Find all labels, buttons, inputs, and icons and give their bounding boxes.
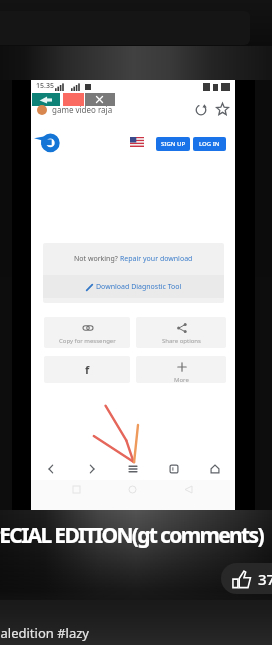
staticText: Download Diagnostic Tool <box>96 282 182 292</box>
button[interactable]: #specialedition #lazy <box>0 624 89 642</box>
staticText: Repair your download <box>120 254 193 264</box>
button[interactable]: Video player <box>12 80 255 510</box>
button[interactable]: Home <box>129 486 136 493</box>
staticText: f <box>85 362 90 377</box>
button[interactable]: Back <box>44 462 58 476</box>
button[interactable]: Forward <box>85 462 99 476</box>
staticText: Copy for messenger <box>59 337 116 345</box>
button[interactable]: Copy for messenger <box>44 317 130 348</box>
button[interactable]: SPECIAL EDITION(gt comments) <box>0 521 263 550</box>
button[interactable]: Facebook <box>44 356 130 383</box>
staticText: Not working? <box>74 254 120 264</box>
button[interactable]: Menu <box>126 462 140 476</box>
staticText: 372 <box>258 569 272 589</box>
staticText: More <box>174 376 189 383</box>
button[interactable]: Back <box>185 486 192 493</box>
staticText: Share options <box>162 337 201 345</box>
button[interactable]: Bookmark <box>216 103 229 116</box>
staticText: 15.35 <box>36 81 54 91</box>
staticText: SPECIAL EDITION(gt comments) <box>0 521 263 550</box>
button[interactable]: LOG IN <box>193 137 226 151</box>
button[interactable]: Download Diagnostic Tool <box>43 275 224 298</box>
staticText: LOG IN <box>199 140 220 148</box>
button[interactable]: More <box>136 356 226 383</box>
button[interactable]: Reload <box>195 104 207 116</box>
button[interactable]: Share options <box>136 317 226 348</box>
staticText: #specialedition #lazy <box>0 624 89 642</box>
button[interactable]: Close tab <box>95 95 104 104</box>
button[interactable]: Tabs <box>167 462 181 476</box>
button[interactable]: Home <box>208 462 222 476</box>
button[interactable]: SIGN UP <box>156 137 190 151</box>
staticText: SIGN UP <box>161 140 186 148</box>
button[interactable]: 372 <box>221 563 272 594</box>
button[interactable]: Recents <box>73 486 80 493</box>
staticText: game video raja <box>52 104 113 115</box>
